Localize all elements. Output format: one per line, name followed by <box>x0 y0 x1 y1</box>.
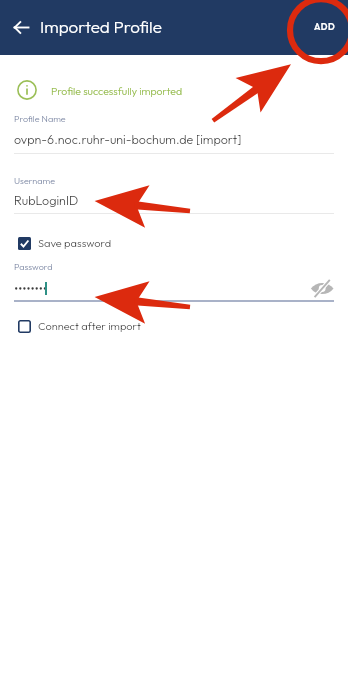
staticText: Profile successfully imported <box>51 84 183 97</box>
staticText: ovpn-6.noc.ruhr-uni-bochum.de [import] <box>14 131 242 147</box>
staticText: Password <box>14 261 53 272</box>
staticText: RubLoginID <box>14 192 79 208</box>
staticText: Connect after import <box>38 319 141 333</box>
staticText: ADD <box>314 21 336 32</box>
staticText: Imported Profile <box>40 16 162 37</box>
button[interactable]: Toggle password visibility <box>308 276 336 300</box>
button[interactable]: Connect after import <box>18 319 141 333</box>
staticText: Save password <box>38 236 112 250</box>
button[interactable]: Back <box>8 14 35 41</box>
button[interactable]: ADD <box>305 13 345 40</box>
staticText: Username <box>14 175 55 186</box>
staticText: Profile Name <box>14 113 66 124</box>
button[interactable]: Save password <box>18 236 112 250</box>
